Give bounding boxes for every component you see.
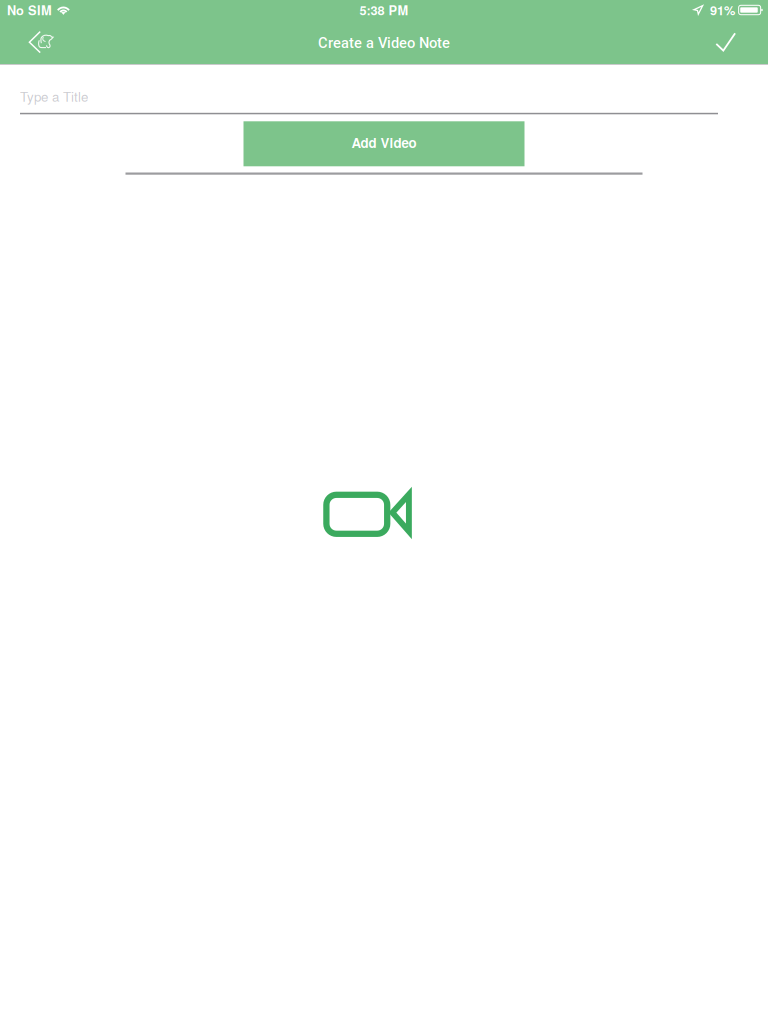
staticText: Create a Video Note	[318, 34, 450, 52]
staticText: 91%	[710, 1, 735, 19]
staticText: Add Video	[351, 133, 416, 152]
button[interactable]: Save note	[699, 20, 768, 64]
staticText: Type a Title	[20, 86, 88, 105]
button[interactable]: Back	[0, 20, 65, 64]
staticText: 5:38 PM	[359, 1, 408, 19]
button[interactable]: Add Video	[243, 121, 524, 166]
staticText: No SIM	[7, 1, 52, 19]
button[interactable]: Type a Title	[20, 79, 718, 114]
